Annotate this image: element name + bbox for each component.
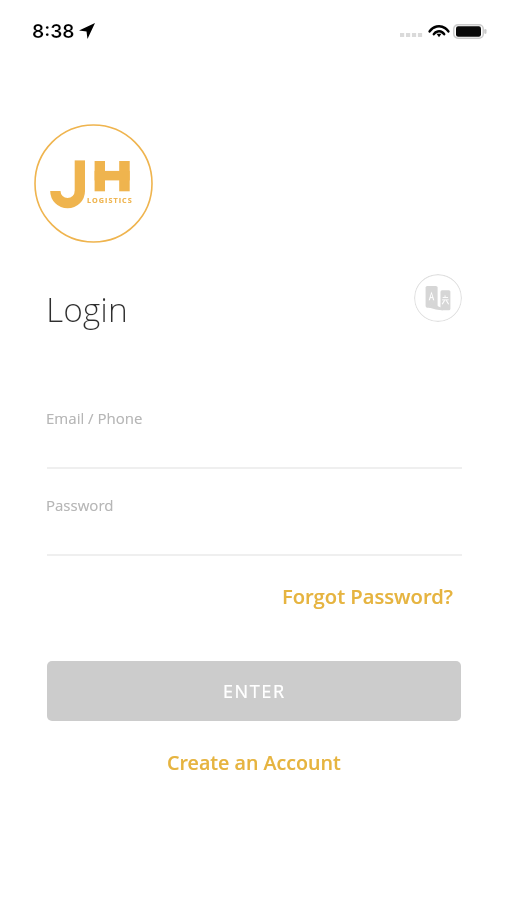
- staticText: 8:38: [32, 20, 75, 43]
- staticText: Email / Phone: [46, 408, 143, 428]
- button[interactable]: ENTER: [47, 661, 461, 721]
- staticText: Login: [46, 286, 128, 332]
- button[interactable]: Forgot Password?: [282, 582, 453, 610]
- staticText: Password: [46, 495, 114, 515]
- button[interactable]: Email / Phone: [47, 398, 462, 471]
- staticText: LOGISTICS: [87, 195, 133, 205]
- button[interactable]: Change language: [414, 274, 462, 322]
- staticText: Create an Account: [167, 749, 341, 776]
- button[interactable]: Password: [47, 487, 462, 560]
- staticText: Forgot Password?: [282, 582, 453, 610]
- staticText: ENTER: [223, 679, 286, 704]
- button[interactable]: Create an Account: [0, 749, 507, 776]
